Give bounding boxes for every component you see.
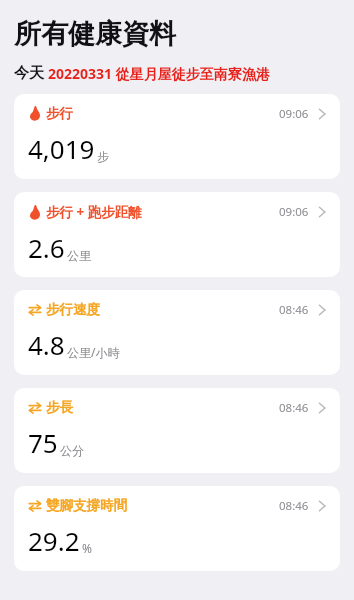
staticText: 公分 [60,443,84,458]
staticText: 今天 [14,64,44,83]
staticText: 步行 [46,105,73,122]
staticText: 09:06 [279,106,309,122]
staticText: 29.2 [28,523,80,558]
staticText: 雙腳支撐時間 [46,497,127,514]
staticText: 步行 + 跑步距離 [46,203,142,221]
staticText: 公里 [67,248,91,263]
staticText: 2.6 [28,230,65,265]
staticText: 08:46 [279,400,309,416]
staticText: % [82,540,92,556]
staticText: 步行速度 [46,301,100,318]
staticText: 08:46 [279,498,309,514]
staticText: 20220331 從星月屋徒步至南寮漁港 [48,64,270,83]
staticText: 公里/小時 [67,344,120,360]
staticText: 步長 [46,399,73,416]
staticText: 75 [28,425,58,460]
staticText: 所有健康資料 [14,17,176,51]
button[interactable]: 步行速度 [14,290,340,375]
staticText: 08:46 [279,302,309,318]
staticText: 步 [97,149,109,164]
staticText: 4,019 [28,131,95,166]
button[interactable]: 步長 [14,388,340,473]
button[interactable]: 步行 [14,94,340,179]
staticText: 09:06 [279,204,309,220]
button[interactable]: 步行 + 跑步距離 [14,192,340,277]
staticText: 4.8 [28,327,65,362]
button[interactable]: 雙腳支撐時間 [14,486,340,571]
